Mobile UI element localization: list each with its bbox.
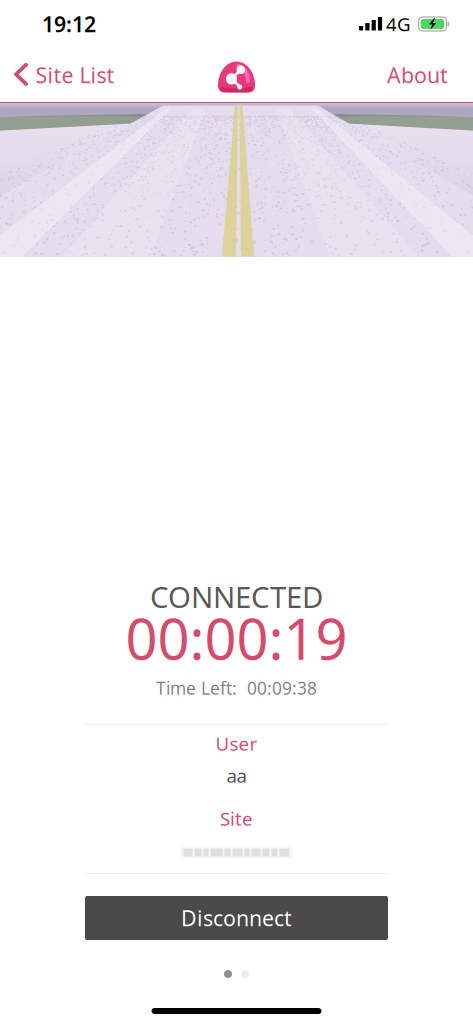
staticText: Site <box>220 806 253 831</box>
staticText: 19:12 <box>42 10 96 38</box>
button[interactable]: Disconnect <box>85 896 388 940</box>
staticText: User <box>215 731 257 756</box>
staticText: Disconnect <box>181 904 292 932</box>
staticText: aa <box>226 763 246 788</box>
staticText: 00:00:19 <box>125 601 347 675</box>
staticText: 4G <box>386 12 411 36</box>
staticText: About <box>387 61 448 89</box>
staticText: Time Left: 00:09:38 <box>156 676 317 699</box>
staticText: Site List <box>35 61 114 89</box>
button[interactable]: Site List <box>0 48 114 102</box>
staticText: CONNECTED <box>150 577 323 616</box>
button[interactable]: About <box>387 48 473 102</box>
